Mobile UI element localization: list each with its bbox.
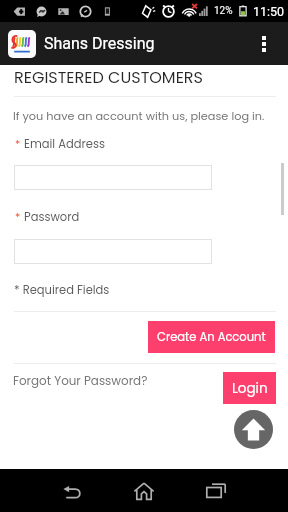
staticText: * <box>15 209 21 224</box>
button[interactable] <box>14 165 212 190</box>
button[interactable]: Shans Dressing home <box>8 30 36 58</box>
staticText: If you have an account with us, please l… <box>13 108 265 124</box>
staticText: Password <box>24 209 80 225</box>
staticText: REGISTERED CUSTOMERS <box>14 66 203 88</box>
staticText: * Required Fields <box>14 282 110 298</box>
button[interactable] <box>14 239 212 264</box>
button[interactable]: Back <box>52 469 92 512</box>
staticText: Shans Dressing <box>44 34 155 53</box>
staticText: Login <box>232 379 268 398</box>
button[interactable]: More options <box>245 25 283 63</box>
button[interactable]: Scroll to top <box>234 410 273 449</box>
staticText: 12% <box>214 5 233 17</box>
button[interactable]: Login <box>223 372 276 404</box>
button[interactable]: Home <box>124 469 164 512</box>
staticText: Email Address <box>24 136 105 152</box>
button[interactable]: Recent apps <box>196 469 236 512</box>
staticText: 11:50 <box>253 4 285 19</box>
staticText: * <box>15 136 21 151</box>
staticText: Forgot Your Password? <box>13 373 148 390</box>
staticText: Create An Account <box>157 329 266 345</box>
button[interactable]: Create An Account <box>148 321 275 353</box>
